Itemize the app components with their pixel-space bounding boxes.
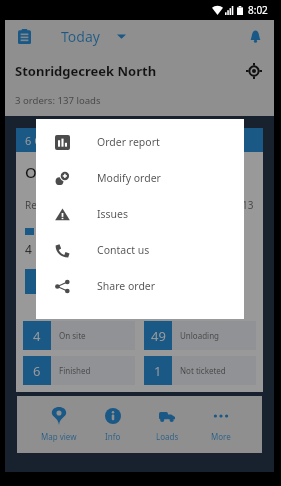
staticText: Today — [61, 27, 100, 46]
staticText: 49 — [151, 327, 166, 345]
staticText: Finished — [59, 365, 91, 376]
button[interactable]: Notifications — [237, 20, 274, 52]
staticText: 4 — [33, 327, 41, 345]
staticText: Loads — [156, 431, 179, 442]
button[interactable]: Order report — [36, 124, 244, 160]
staticText: 6 Orders — [25, 133, 70, 148]
staticText: Order report — [97, 135, 160, 149]
staticText: 1 — [154, 362, 162, 380]
staticText: Unloading — [180, 330, 220, 341]
staticText: 8:02 — [248, 3, 268, 17]
staticText: 13 — [242, 198, 254, 212]
staticText: Order #1234 — [25, 162, 115, 182]
staticText: Requested — [25, 198, 76, 212]
staticText: VIEW — [44, 275, 69, 289]
staticText: 3 orders: 137 loads — [15, 94, 101, 107]
staticText: Issues — [97, 207, 129, 221]
button[interactable]: My location — [239, 56, 269, 86]
staticText: Info — [105, 431, 121, 442]
button[interactable]: Issues — [36, 196, 244, 232]
staticText: On site — [59, 330, 86, 341]
button[interactable]: Share order — [36, 268, 244, 304]
staticText: 4 — [25, 241, 32, 257]
button[interactable]: Info — [86, 396, 140, 453]
button[interactable]: 6 — [23, 356, 135, 385]
staticText: Contact us — [97, 243, 150, 257]
button[interactable]: 49 — [144, 321, 256, 350]
staticText: Share order — [97, 279, 156, 293]
staticText: Map view — [41, 431, 77, 442]
button[interactable]: Modify order — [36, 160, 244, 196]
button[interactable]: Orders — [5, 20, 43, 52]
button[interactable]: More — [194, 396, 248, 453]
button[interactable]: VIEW — [25, 269, 87, 294]
button[interactable]: Map view — [31, 396, 86, 453]
staticText: Modify order — [97, 171, 161, 185]
staticText: 6 — [33, 362, 41, 380]
button[interactable]: 1 — [144, 356, 256, 385]
staticText: More — [211, 431, 231, 442]
button[interactable]: 4 — [23, 321, 135, 350]
staticText: Stonridgecreek North — [15, 62, 157, 80]
button[interactable]: Contact us — [36, 232, 244, 268]
staticText: Not ticketed — [180, 365, 226, 376]
button[interactable]: Loads — [140, 396, 194, 453]
button[interactable]: Today — [61, 20, 126, 52]
